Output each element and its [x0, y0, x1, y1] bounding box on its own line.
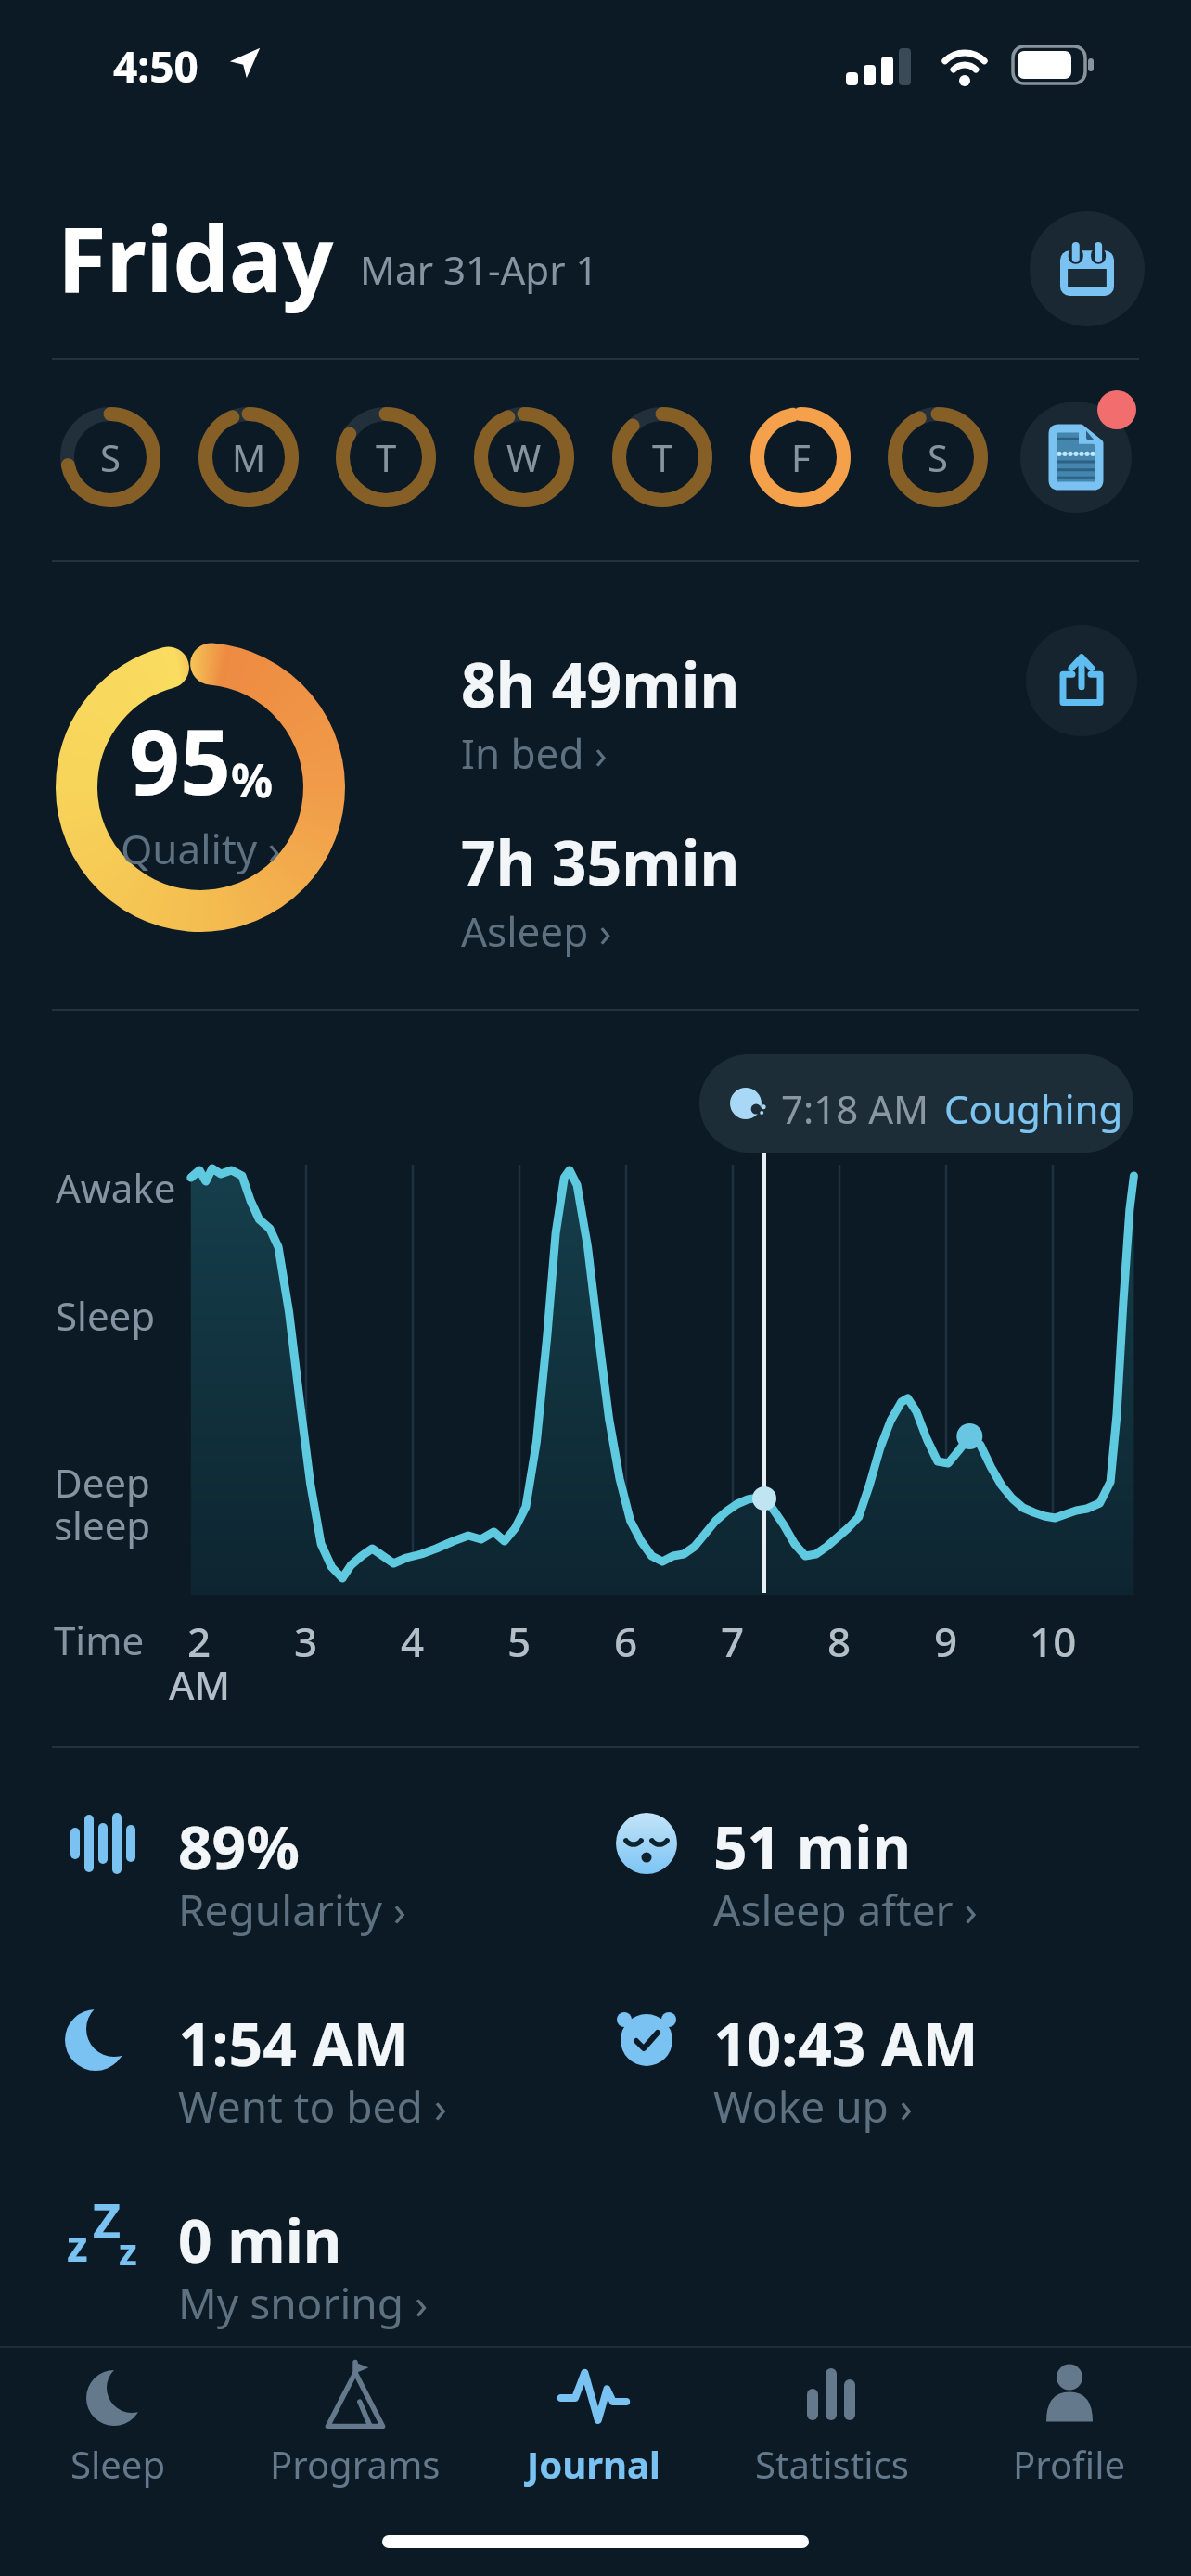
staticText: 4: [401, 1613, 425, 1669]
button[interactable]: Journal: [492, 2353, 696, 2493]
staticText: 1:54 AM: [178, 2003, 410, 2084]
staticText: S: [928, 432, 948, 482]
button[interactable]: T: [336, 407, 436, 507]
button[interactable]: Sleep: [16, 2353, 220, 2493]
staticText: My snoring ›: [178, 2274, 429, 2332]
staticText: 9: [934, 1613, 958, 1669]
button[interactable]: In bed ›: [461, 725, 608, 781]
staticText: AM: [169, 1658, 231, 1711]
staticText: S: [100, 432, 121, 482]
staticText: T: [376, 432, 397, 482]
button[interactable]: M: [198, 407, 299, 507]
staticText: Regularity ›: [178, 1881, 407, 1939]
staticText: W: [506, 432, 542, 482]
button[interactable]: Asleep ›: [461, 903, 612, 959]
button[interactable]: S: [888, 407, 988, 507]
staticText: 7: [721, 1613, 745, 1669]
staticText: Sleep: [70, 2439, 165, 2489]
staticText: Sleep: [56, 1289, 156, 1342]
staticText: M: [232, 432, 266, 482]
staticText: Journal: [527, 2439, 660, 2489]
staticText: Statistics: [755, 2439, 909, 2489]
staticText: Programs: [270, 2439, 441, 2489]
staticText: 89%: [178, 1806, 300, 1887]
button[interactable]: S: [60, 407, 160, 507]
button[interactable]: [601, 1790, 991, 1919]
staticText: Awake: [56, 1161, 176, 1214]
staticText: T: [652, 432, 673, 482]
button[interactable]: [58, 1790, 447, 1919]
button[interactable]: W: [474, 407, 574, 507]
staticText: 7h 35min: [461, 820, 740, 903]
staticText: 7:18 AM: [781, 1082, 929, 1135]
button[interactable]: Programs: [253, 2353, 457, 2493]
staticText: 10: [1030, 1613, 1077, 1669]
staticText: 0 min: [178, 2200, 342, 2280]
staticText: Friday: [58, 197, 334, 318]
button[interactable]: [58, 2181, 447, 2311]
staticText: Time: [54, 1613, 145, 1666]
button[interactable]: 95: [56, 643, 345, 932]
staticText: 8h 49min: [461, 642, 740, 725]
button[interactable]: [58, 1984, 447, 2114]
button[interactable]: [1020, 402, 1132, 513]
staticText: Went to bed ›: [178, 2077, 447, 2136]
staticText: Quality ›: [121, 821, 281, 876]
staticText: 8: [827, 1613, 852, 1669]
staticText: Deep sleep: [54, 1456, 151, 1551]
button[interactable]: F: [750, 407, 851, 507]
button[interactable]: [1030, 211, 1145, 326]
staticText: 2: [187, 1613, 211, 1669]
staticText: F: [791, 432, 811, 482]
button[interactable]: [1026, 625, 1137, 736]
staticText: Woke up ›: [713, 2077, 914, 2136]
staticText: 10:43 AM: [713, 2003, 979, 2084]
button[interactable]: Statistics: [730, 2353, 934, 2493]
staticText: Mar 31-Apr 1: [360, 243, 598, 296]
staticText: Profile: [1013, 2439, 1126, 2489]
staticText: Asleep after ›: [713, 1881, 978, 1939]
button[interactable]: 7:18 AM: [699, 1054, 1133, 1153]
staticText: Coughing: [944, 1082, 1123, 1135]
staticText: z: [119, 2225, 137, 2276]
staticText: 6: [614, 1613, 638, 1669]
staticText: 95: [129, 699, 231, 821]
button[interactable]: [601, 1984, 991, 2114]
staticText: 51 min: [713, 1806, 911, 1887]
staticText: 5: [507, 1613, 531, 1669]
staticText: 3: [294, 1613, 318, 1669]
staticText: 4:50: [113, 37, 198, 96]
staticText: Z: [93, 2187, 122, 2252]
staticText: z: [67, 2216, 88, 2275]
staticText: %: [231, 748, 274, 811]
button[interactable]: T: [612, 407, 712, 507]
button[interactable]: Profile: [967, 2353, 1172, 2493]
